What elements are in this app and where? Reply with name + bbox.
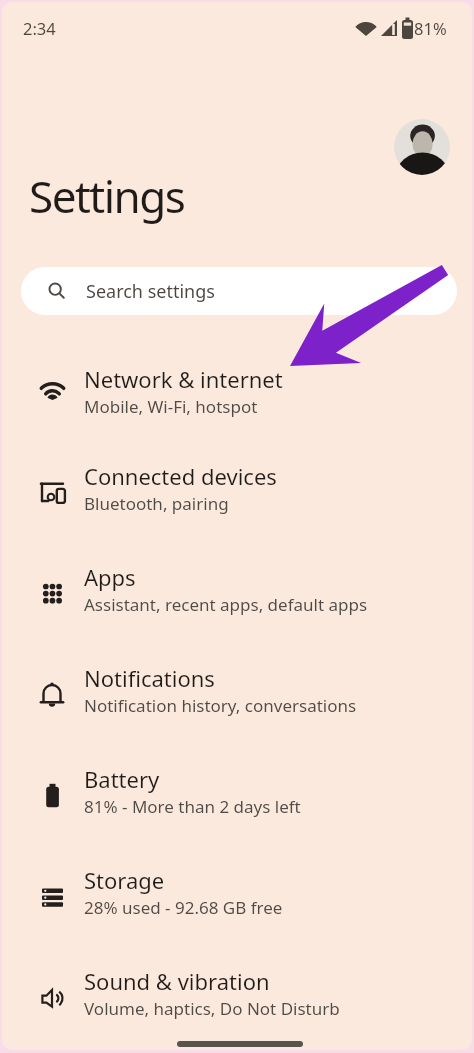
- button[interactable]: Search settings: [21, 267, 457, 315]
- staticText: 2:34: [23, 17, 56, 39]
- staticText: Network & internet: [84, 364, 283, 394]
- staticText: Apps: [84, 562, 136, 592]
- staticText: 81%: [414, 17, 447, 39]
- staticText: Connected devices: [84, 461, 277, 491]
- button[interactable]: Connected devices: [2, 446, 472, 542]
- button[interactable]: Network & internet: [2, 349, 472, 445]
- staticText: Search settings: [86, 279, 215, 304]
- button[interactable]: [394, 119, 450, 175]
- staticText: Mobile, Wi-Fi, hotspot: [84, 395, 258, 418]
- button[interactable]: Battery: [2, 749, 472, 845]
- staticText: Battery: [84, 764, 160, 794]
- button[interactable]: Apps: [2, 547, 472, 643]
- staticText: Assistant, recent apps, default apps: [84, 593, 368, 616]
- staticText: 81% - More than 2 days left: [84, 795, 301, 818]
- staticText: Storage: [84, 865, 165, 895]
- staticText: 28% used - 92.68 GB free: [84, 896, 283, 919]
- button[interactable]: Sound & vibration: [2, 951, 472, 1047]
- staticText: Notification history, conversations: [84, 694, 357, 717]
- staticText: Sound & vibration: [84, 966, 270, 996]
- staticText: Notifications: [84, 663, 215, 693]
- button[interactable]: Storage: [2, 850, 472, 946]
- staticText: Settings: [29, 166, 185, 226]
- button[interactable]: Notifications: [2, 648, 472, 744]
- staticText: Bluetooth, pairing: [84, 492, 229, 515]
- staticText: Volume, haptics, Do Not Disturb: [84, 997, 340, 1020]
